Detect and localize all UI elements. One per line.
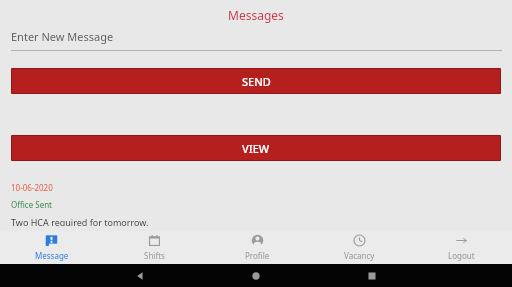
button[interactable]: Vacancy bbox=[308, 231, 410, 264]
staticText: SEND bbox=[242, 74, 271, 89]
staticText: Messages bbox=[228, 7, 284, 23]
staticText: 10-06-2020 bbox=[11, 182, 53, 193]
button[interactable]: Back bbox=[130, 266, 150, 286]
button[interactable]: Profile bbox=[206, 231, 308, 264]
button[interactable]: Recent apps bbox=[362, 266, 382, 286]
staticText: Vacancy bbox=[344, 250, 375, 261]
staticText: Logout bbox=[448, 250, 475, 261]
staticText: VIEW bbox=[242, 141, 270, 156]
staticText: Two HCA required for tomorrow. bbox=[11, 216, 149, 226]
button[interactable]: SEND bbox=[12, 69, 500, 93]
button[interactable]: Shifts bbox=[103, 231, 206, 264]
button[interactable]: Message bbox=[0, 231, 103, 264]
staticText: Shifts bbox=[144, 250, 165, 261]
staticText: Message bbox=[35, 250, 69, 261]
button[interactable]: Logout bbox=[410, 231, 512, 264]
button[interactable]: 10-06-2020 bbox=[0, 178, 512, 231]
button[interactable]: VIEW bbox=[12, 136, 500, 160]
button[interactable]: Enter New Message bbox=[0, 29, 512, 51]
staticText: Office Sent bbox=[11, 199, 52, 210]
staticText: Enter New Message bbox=[11, 29, 114, 44]
button[interactable]: Home bbox=[246, 266, 266, 286]
staticText: Profile bbox=[245, 250, 270, 261]
